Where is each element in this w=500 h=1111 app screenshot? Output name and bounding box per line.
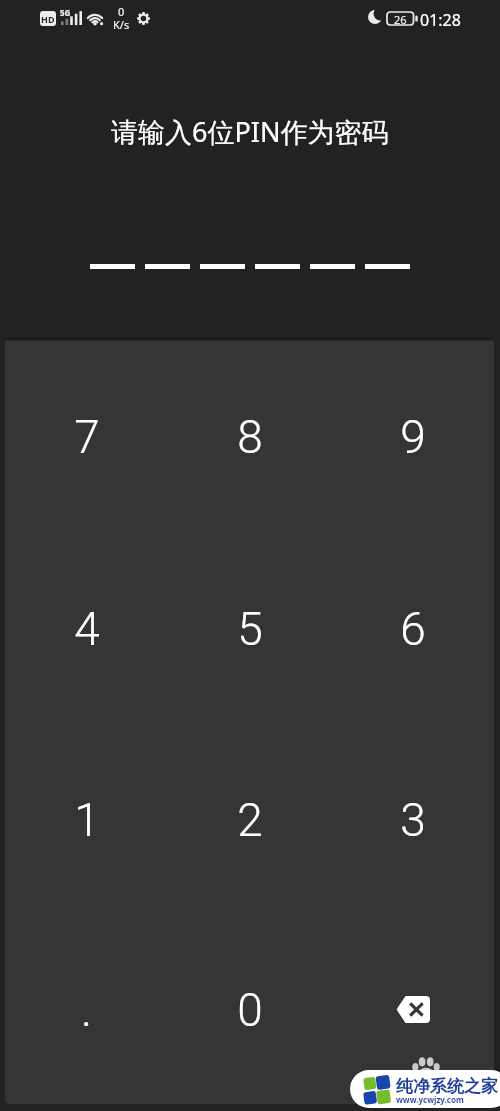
staticText: HD — [41, 13, 55, 25]
staticText: 5 — [237, 602, 263, 656]
staticText: 3 — [400, 793, 426, 847]
button[interactable]: 5 — [168, 529, 331, 720]
button[interactable]: 8 — [168, 337, 331, 529]
button[interactable]: 1 — [5, 720, 168, 911]
staticText: 5G — [60, 7, 71, 18]
staticText: 7 — [74, 410, 100, 464]
staticText: 请输入6位PIN作为密码 — [111, 113, 389, 150]
button[interactable]: Delete — [331, 911, 494, 1101]
staticText: 6 — [400, 602, 426, 656]
button[interactable]: 9 — [331, 337, 494, 529]
staticText: 9 — [400, 410, 426, 464]
staticText: K/s — [113, 17, 130, 32]
staticText: 01:28 — [420, 9, 461, 31]
staticText: 8 — [237, 410, 263, 464]
staticText: 1 — [74, 793, 100, 847]
staticText: 2 — [237, 793, 263, 847]
button[interactable]: 2 — [168, 720, 331, 911]
button[interactable]: 6 — [331, 529, 494, 720]
button[interactable]: 7 — [5, 337, 168, 529]
staticText: 4 — [74, 602, 100, 656]
button[interactable]: . — [5, 911, 168, 1101]
button[interactable]: 0 — [168, 911, 331, 1101]
staticText: 0 — [237, 983, 263, 1037]
staticText: . — [81, 983, 92, 1037]
other: Delete — [396, 996, 430, 1023]
staticText: 纯净系统之家 — [396, 1076, 498, 1097]
button[interactable]: 3 — [331, 720, 494, 911]
staticText: 26 — [394, 12, 407, 25]
staticText: 0 — [118, 4, 125, 19]
button[interactable]: 4 — [5, 529, 168, 720]
staticText: www.ycwjzy.com — [396, 1094, 464, 1105]
